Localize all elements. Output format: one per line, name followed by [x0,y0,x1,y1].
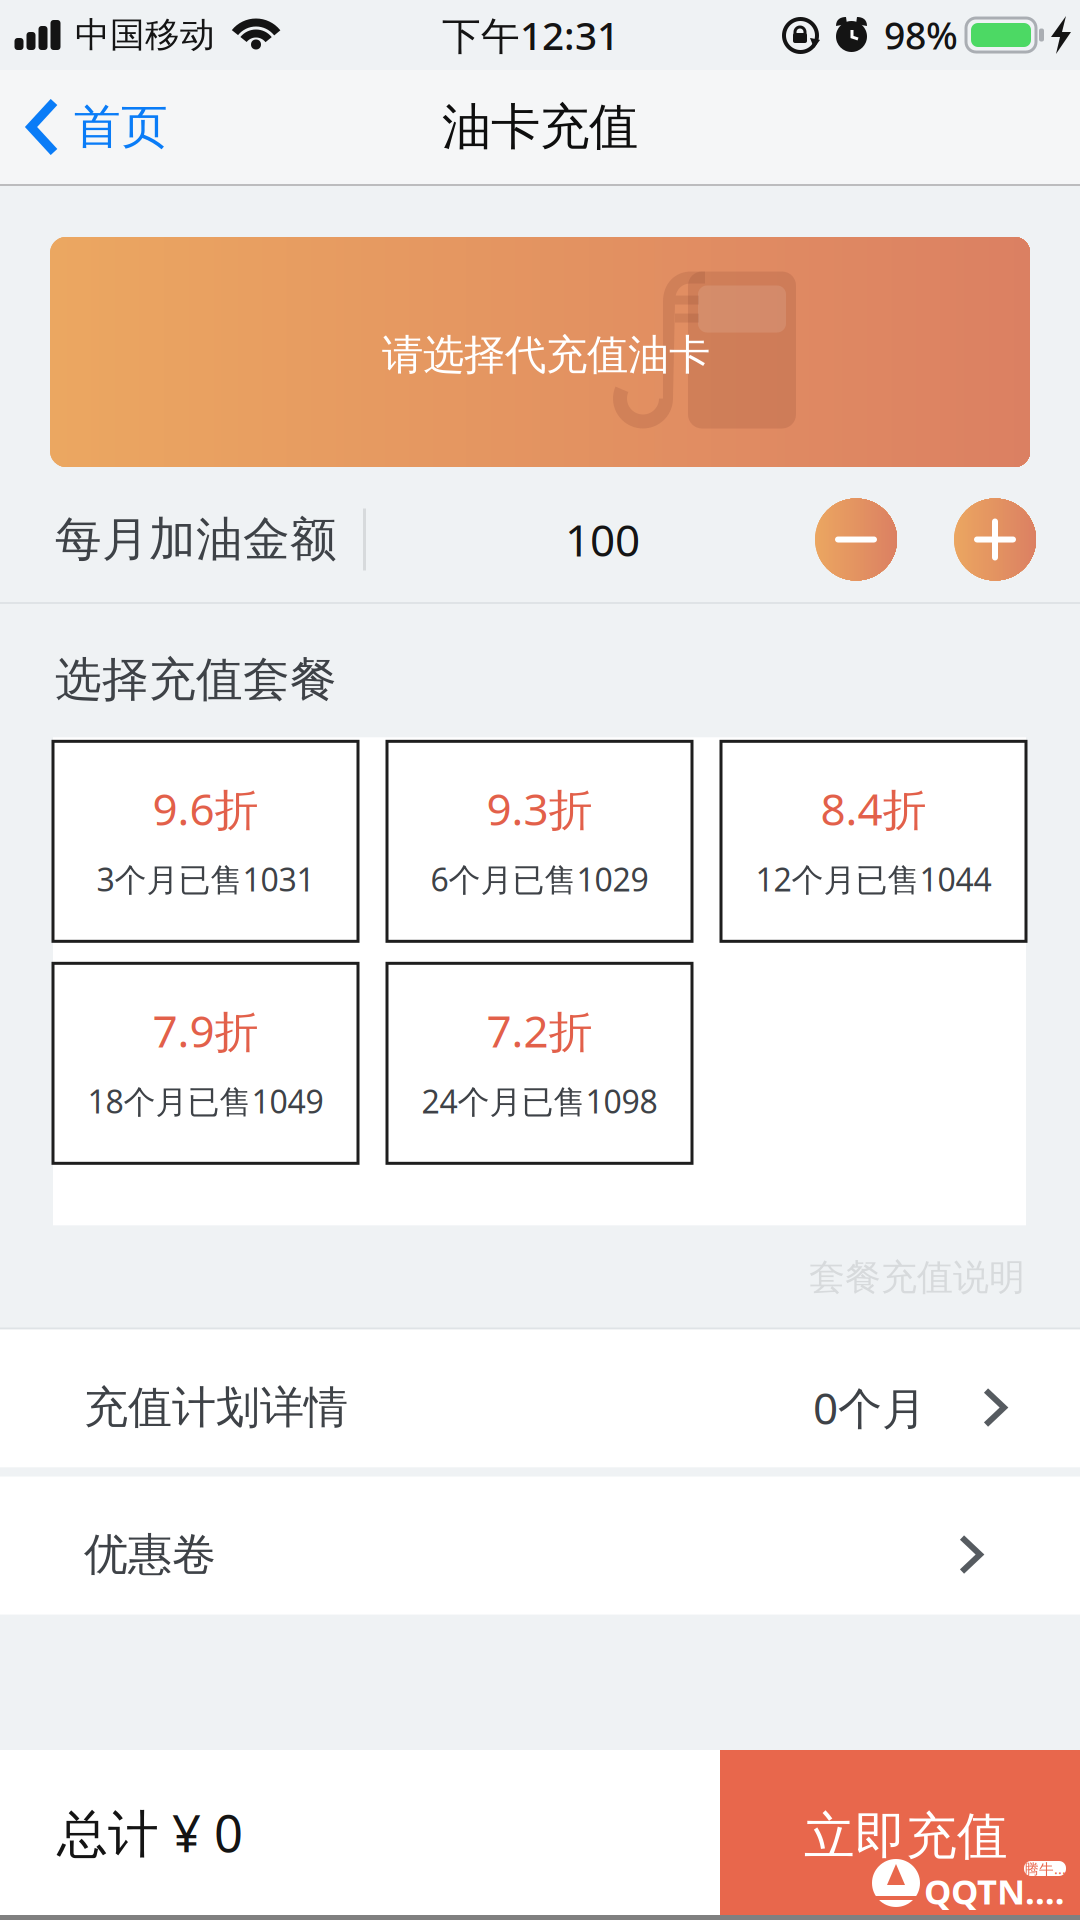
staticText: 98% [884,10,958,60]
button[interactable]: 9.6折 [53,741,358,941]
staticText: 7.9折 [152,1001,258,1060]
staticText: 中国移动 [75,14,215,56]
button[interactable]: 7.9折 [53,963,358,1163]
button[interactable]: 8.4折 [721,741,1026,941]
staticText: 选择充值套餐 [55,651,337,708]
button[interactable]: 7.2折 [387,963,692,1163]
staticText: 充值计划详情 [84,1380,348,1434]
staticText: 下午12:31 [442,9,619,61]
staticText: 每月加油金额 [55,511,337,568]
staticText: 总计 ¥ 0 [57,1799,243,1866]
button[interactable]: 首页 [0,70,192,184]
button[interactable]: 9.3折 [387,741,692,941]
staticText: 24个月已售1098 [421,1080,657,1122]
staticText: 首页 [74,98,168,156]
staticText: 6个月已售1029 [430,858,648,900]
staticText: 3个月已售1031 [96,858,314,900]
staticText: 18个月已售1049 [87,1080,323,1122]
staticText: 100 [565,510,640,569]
staticText: 套餐充值说明 [809,1255,1025,1299]
button[interactable]: Increase amount [954,498,1036,580]
button[interactable]: 请选择代充值油卡 [50,237,1030,467]
staticText: 12个月已售1044 [755,858,991,900]
button[interactable]: 套餐充值说明 [0,1225,1080,1327]
staticText: 8.4折 [820,779,926,838]
staticText: 油卡充值 [442,97,638,157]
staticText: 0个月 [813,1378,926,1437]
staticText: 请选择代充值油卡 [382,330,710,380]
button[interactable]: 充值计划详情 [0,1329,1080,1467]
staticText: 腾牛网 [1024,1859,1066,1878]
staticText: QQTN.com [924,1868,1074,1914]
staticText: 立即充值 [804,1805,1008,1868]
staticText: 优惠卷 [84,1527,216,1581]
staticText: 9.3折 [486,779,592,838]
staticText: 9.6折 [152,779,258,838]
staticText: 7.2折 [486,1001,592,1060]
button[interactable]: Decrease amount [815,498,897,580]
button[interactable]: 优惠卷 [0,1476,1080,1614]
button[interactable]: 立即充值 [720,1750,1080,1915]
